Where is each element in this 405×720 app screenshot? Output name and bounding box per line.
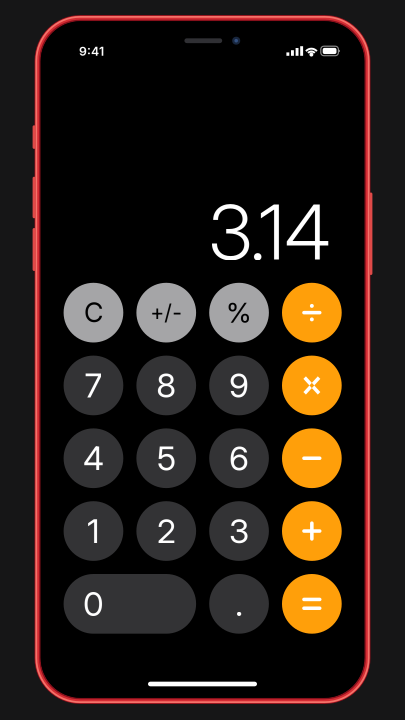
button[interactable]: 9: [209, 356, 269, 415]
staticText: C: [84, 296, 103, 329]
button[interactable]: 7: [64, 356, 123, 415]
staticText: 9:41: [79, 44, 104, 59]
button[interactable]: 5: [136, 428, 196, 488]
button[interactable]: Divide: [282, 283, 342, 342]
button[interactable]: 0: [64, 574, 196, 634]
staticText: 5: [157, 438, 176, 478]
button[interactable]: Multiply: [282, 356, 342, 415]
staticText: .: [235, 584, 243, 624]
staticText: 8: [156, 365, 176, 406]
button[interactable]: C: [64, 283, 123, 342]
button[interactable]: Subtract: [282, 428, 342, 488]
button[interactable]: %: [209, 283, 269, 342]
staticText: 4: [83, 438, 104, 478]
staticText: 9: [229, 365, 249, 406]
button[interactable]: 2: [136, 501, 196, 561]
staticText: %: [226, 296, 252, 329]
staticText: 0: [83, 584, 104, 624]
button[interactable]: +/-: [136, 283, 196, 342]
button[interactable]: 8: [136, 356, 196, 415]
staticText: 7: [84, 365, 102, 406]
button[interactable]: .: [209, 574, 269, 634]
staticText: 2: [157, 511, 176, 551]
button[interactable]: Equals: [282, 574, 342, 634]
button[interactable]: 3: [209, 501, 269, 561]
button[interactable]: 4: [64, 428, 123, 488]
staticText: 1: [87, 511, 100, 551]
staticText: 3: [229, 511, 249, 551]
staticText: 3.14: [209, 186, 331, 277]
button[interactable]: 6: [209, 428, 269, 488]
staticText: +/-: [150, 300, 182, 325]
button[interactable]: Add: [282, 501, 342, 561]
button[interactable]: 1: [64, 501, 123, 561]
staticText: 6: [229, 438, 249, 478]
